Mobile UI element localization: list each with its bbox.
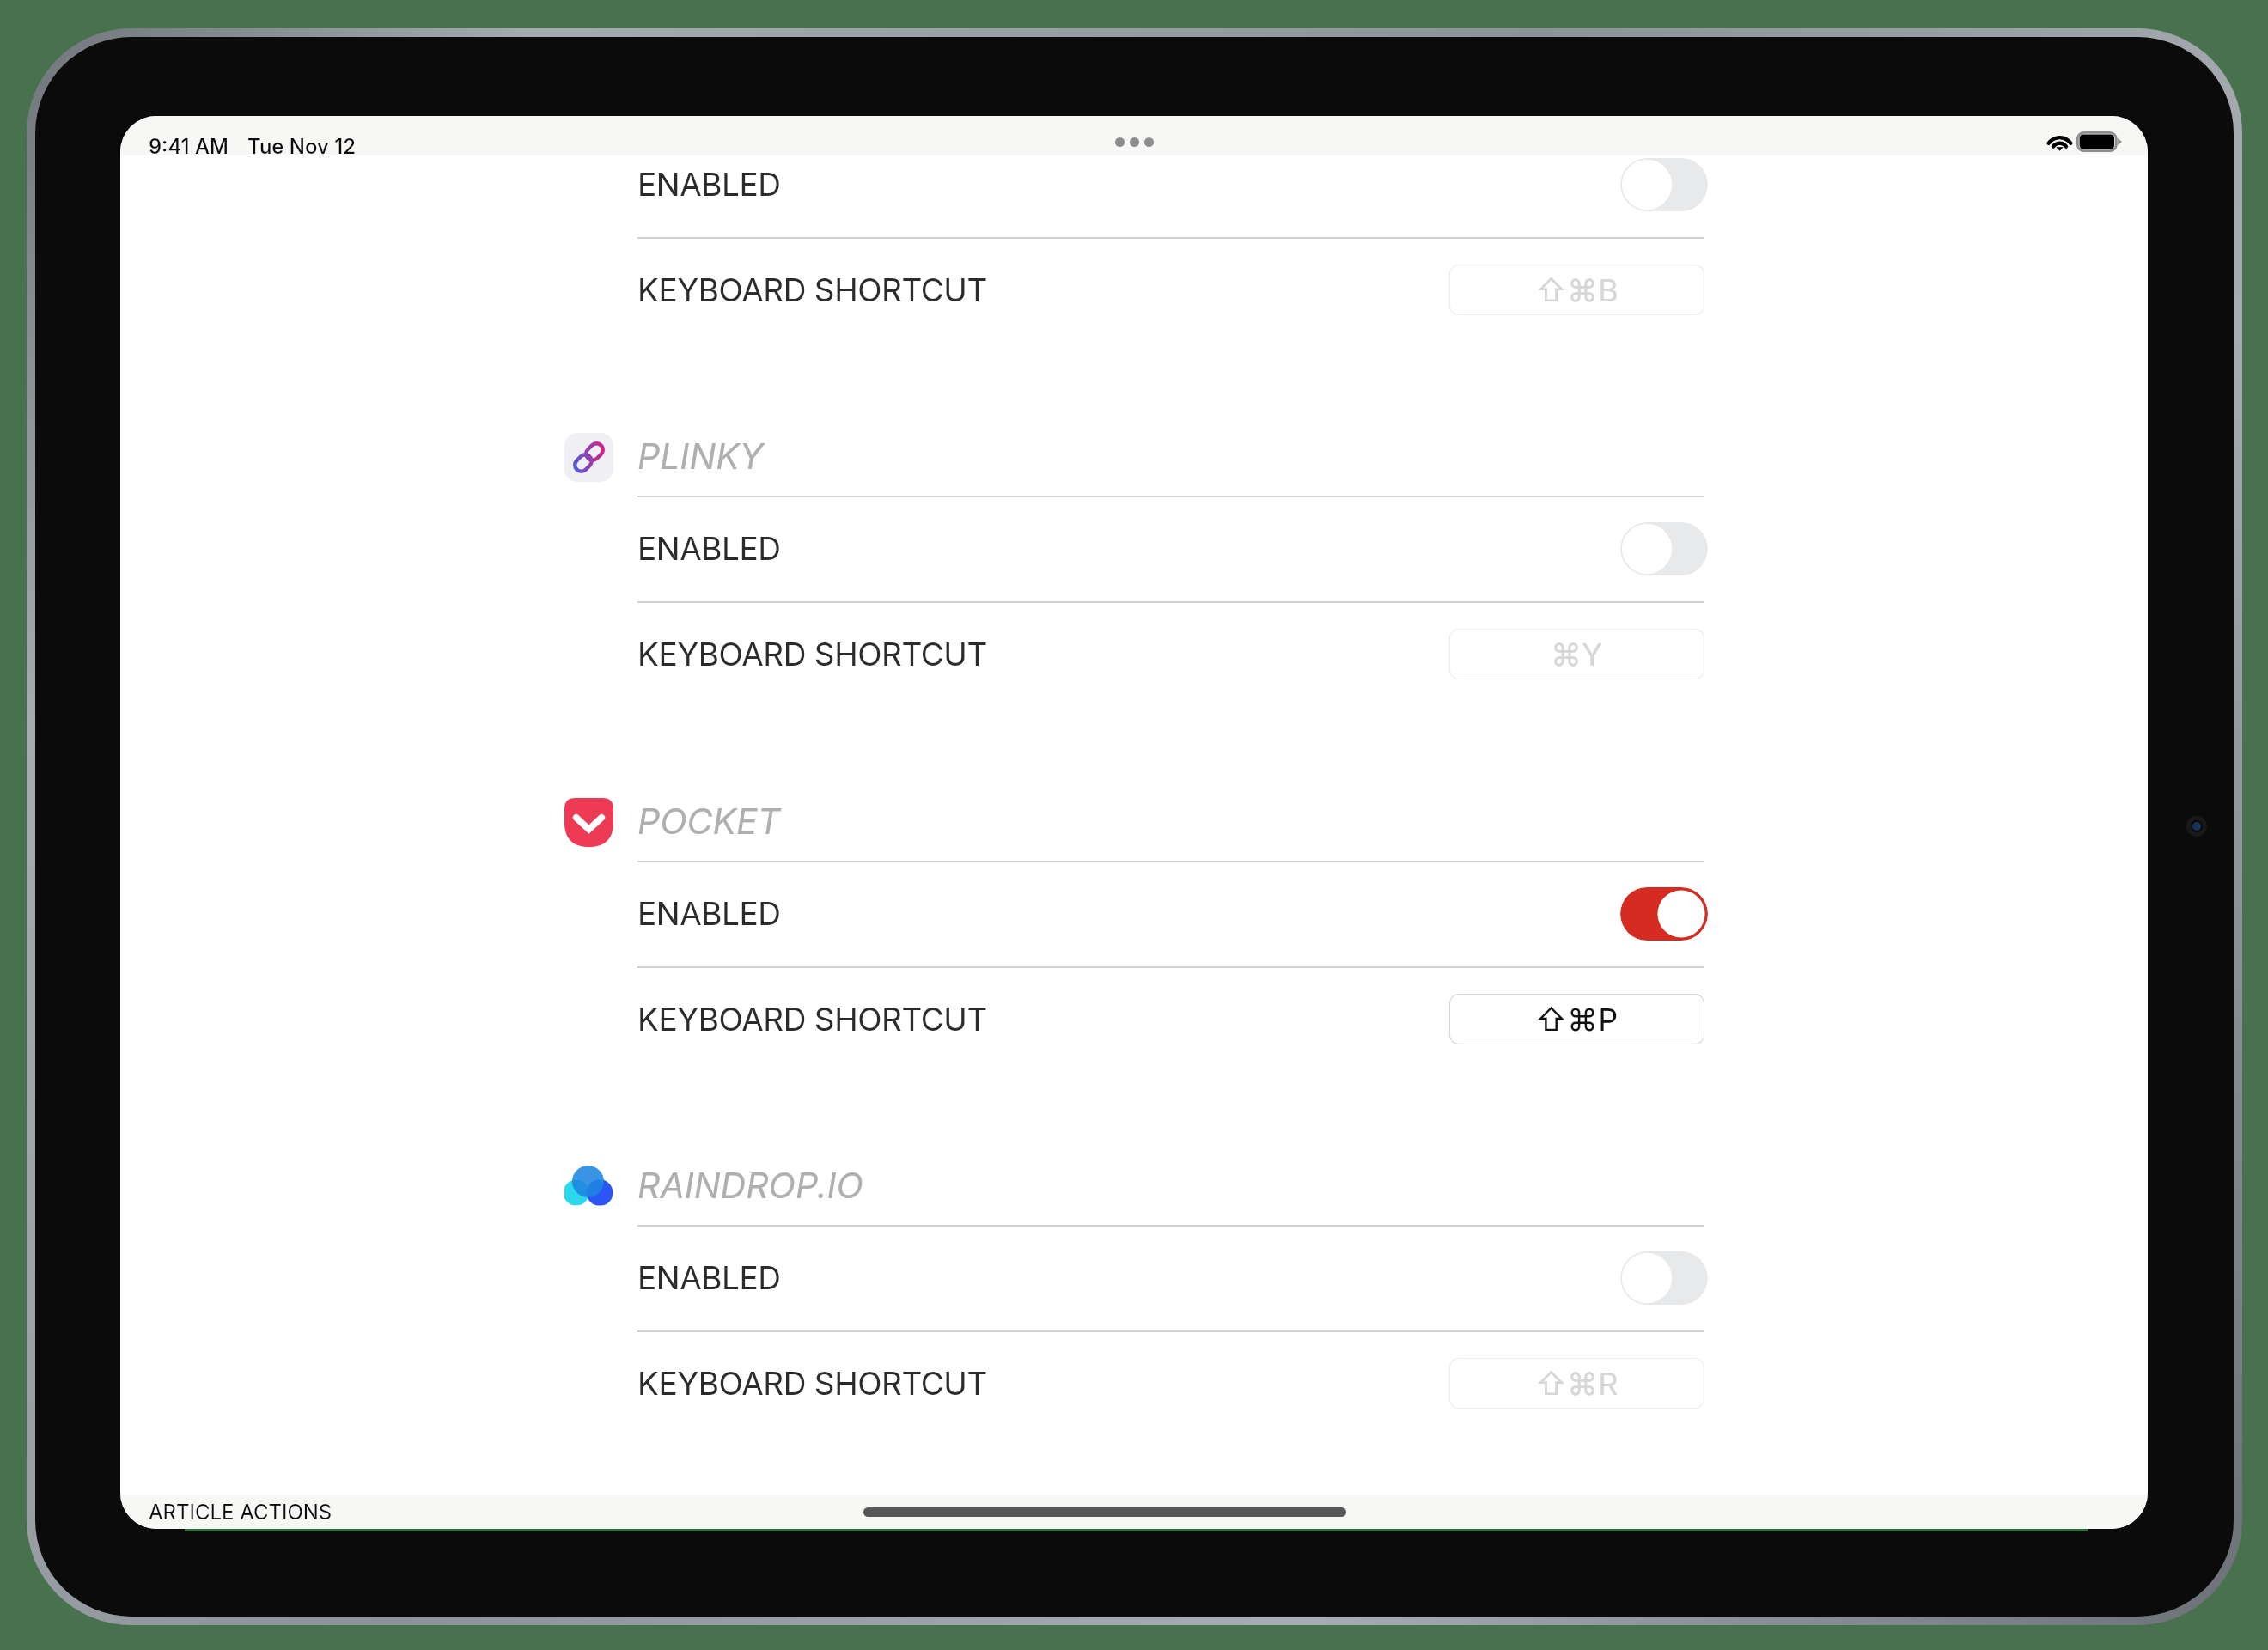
button[interactable]: Multitasking controls	[1115, 137, 1154, 147]
button[interactable]: KEYBOARD SHORTCUT	[637, 237, 1704, 343]
staticText: KEYBOARD SHORTCUT	[637, 1000, 987, 1038]
button[interactable]: ENABLED	[637, 861, 1704, 966]
staticText: ARTICLE ACTIONS	[149, 1500, 332, 1525]
staticText: ⇧⌘B	[1535, 271, 1619, 309]
button[interactable]: Enabled, off	[1620, 522, 1708, 575]
staticText: 9:41 AM	[149, 134, 229, 159]
staticText: KEYBOARD SHORTCUT	[637, 1364, 987, 1403]
button[interactable]: KEYBOARD SHORTCUT	[637, 601, 1704, 707]
button[interactable]: ARTICLE ACTIONS	[149, 1500, 332, 1525]
button[interactable]: Home indicator	[863, 1507, 1346, 1517]
button[interactable]: RAINDROP.IO	[564, 1155, 1704, 1211]
other: Battery	[2076, 131, 2122, 152]
staticText: RAINDROP.IO	[637, 1164, 863, 1207]
staticText: POCKET	[637, 800, 781, 843]
staticText: ENABLED	[637, 894, 781, 933]
button[interactable]: ⌘Y	[1449, 629, 1704, 679]
staticText: ⌘Y	[1551, 636, 1603, 673]
other: Wi-Fi	[2049, 132, 2070, 151]
button[interactable]: PLINKY	[564, 426, 1704, 482]
staticText: ⇧⌘R	[1535, 1365, 1619, 1403]
staticText: ENABLED	[637, 165, 781, 204]
button[interactable]: KEYBOARD SHORTCUT	[637, 966, 1704, 1072]
button[interactable]: POCKET	[564, 791, 1704, 847]
staticText: ENABLED	[637, 1258, 781, 1297]
button[interactable]: Enabled, on	[1620, 887, 1708, 941]
button[interactable]: Enabled, off	[1620, 158, 1708, 211]
button[interactable]: ⇧⌘P	[1449, 994, 1704, 1044]
staticText: KEYBOARD SHORTCUT	[637, 271, 987, 309]
button[interactable]: ENABLED	[637, 496, 1704, 601]
button[interactable]: KEYBOARD SHORTCUT	[637, 1330, 1704, 1436]
staticText: PLINKY	[637, 435, 764, 478]
button[interactable]: Enabled, off	[1620, 1251, 1708, 1305]
staticText: ⇧⌘P	[1535, 1001, 1619, 1038]
button[interactable]: ⇧⌘R	[1449, 1358, 1704, 1409]
button[interactable]: ⇧⌘B	[1449, 265, 1704, 315]
button[interactable]: ENABLED	[637, 131, 1704, 237]
button[interactable]: ENABLED	[637, 1225, 1704, 1330]
staticText: ENABLED	[637, 529, 781, 568]
staticText: Tue Nov 12	[247, 134, 356, 159]
staticText: KEYBOARD SHORTCUT	[637, 635, 987, 673]
